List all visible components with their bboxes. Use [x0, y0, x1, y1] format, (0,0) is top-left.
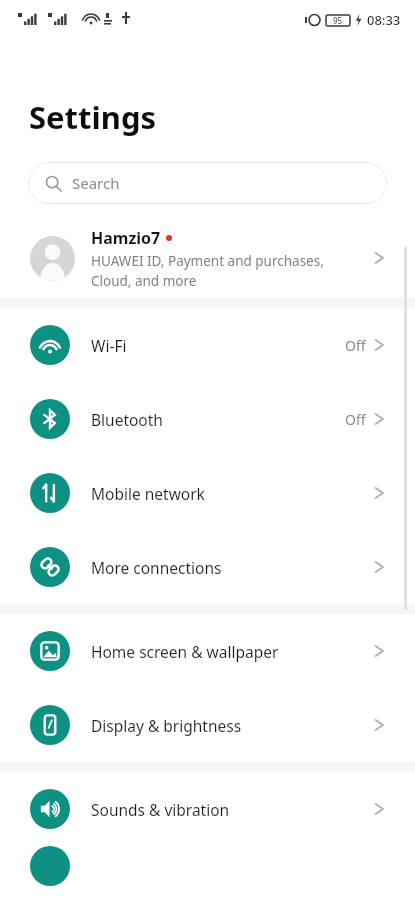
- staticText: Display & brightness: [91, 715, 374, 736]
- staticText: Mobile network: [91, 483, 374, 504]
- staticText: Wi-Fi: [91, 335, 345, 356]
- button[interactable]: Home screen & wallpaper: [0, 614, 415, 688]
- button[interactable]: [0, 846, 415, 900]
- button[interactable]: Sounds & vibration: [0, 772, 415, 846]
- button[interactable]: Search: [28, 162, 387, 204]
- staticText: Search: [72, 173, 120, 193]
- staticText: Off: [345, 410, 366, 429]
- button[interactable]: Display & brightness: [0, 688, 415, 762]
- button[interactable]: More connections: [0, 530, 415, 604]
- button[interactable]: Bluetooth: [0, 382, 415, 456]
- button[interactable]: Mobile network: [0, 456, 415, 530]
- staticText: More connections: [91, 557, 374, 578]
- staticText: Hamzio7: [91, 227, 161, 249]
- staticText: Bluetooth: [91, 409, 345, 430]
- staticText: HUAWEI ID, Payment and purchases, Cloud,…: [91, 252, 324, 290]
- staticText: Settings: [29, 96, 157, 138]
- staticText: Sounds & vibration: [91, 799, 374, 820]
- staticText: 95: [333, 15, 343, 26]
- staticText: Off: [345, 336, 366, 355]
- button[interactable]: Wi-Fi: [0, 308, 415, 382]
- staticText: Home screen & wallpaper: [91, 641, 374, 662]
- button[interactable]: Hamzio7: [0, 218, 415, 298]
- staticText: 08:33: [367, 11, 401, 29]
